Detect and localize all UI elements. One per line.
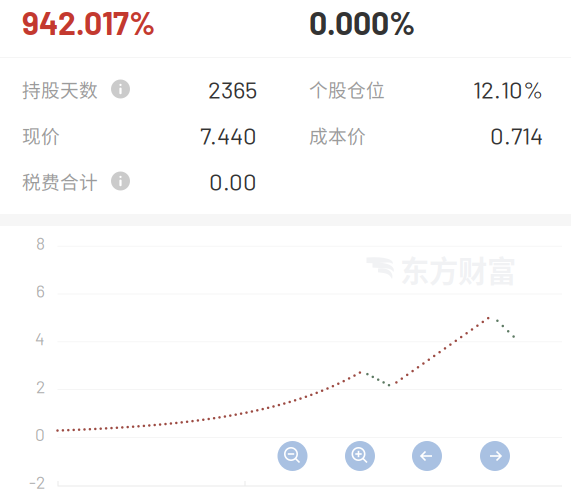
staticText: 现价 (22, 121, 60, 148)
staticText: 东方财富 (400, 248, 516, 290)
staticText: 成本价 (309, 121, 366, 148)
staticText: 0 (35, 424, 45, 444)
staticText: 4 (35, 328, 45, 349)
staticText: 2 (36, 376, 45, 397)
staticText: 12.10% (473, 75, 543, 103)
button[interactable]: Pan left (412, 441, 442, 471)
staticText: 7.440 (200, 121, 257, 149)
staticText: 6 (36, 280, 45, 301)
button[interactable]: Zoom out (277, 441, 307, 471)
button[interactable]: Pan right (480, 441, 510, 471)
staticText: 942.017% (22, 3, 155, 41)
staticText: 2365 (208, 75, 257, 103)
staticText: 税费合计 (22, 167, 98, 194)
staticText: 持股天数 (22, 75, 98, 102)
staticText: 0.714 (490, 121, 543, 149)
staticText: 个股仓位 (309, 75, 385, 102)
staticText: -2 (29, 471, 45, 492)
staticText: 0.000% (309, 3, 415, 41)
staticText: 0.00 (209, 167, 257, 195)
staticText: 8 (36, 232, 45, 253)
button[interactable]: Zoom in (345, 441, 375, 471)
